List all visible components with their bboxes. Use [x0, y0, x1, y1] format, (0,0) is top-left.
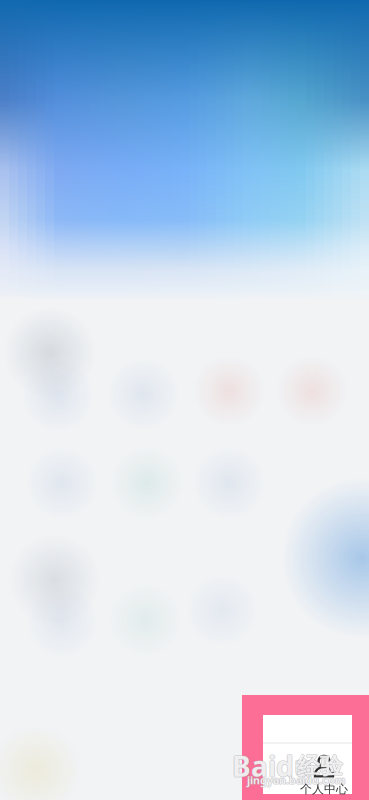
staticText: 经验	[298, 752, 344, 780]
staticText: 经验	[297, 753, 343, 781]
staticText: jingyan.baidu.com	[248, 773, 346, 787]
staticText: 经验	[296, 752, 342, 780]
button[interactable]: 个人中心	[263, 715, 352, 794]
staticText: jingyan.baidu.com	[247, 773, 345, 787]
staticText: Baidu	[233, 747, 313, 785]
staticText: Baidu	[232, 747, 312, 785]
staticText: jingyan.baidu.com	[246, 773, 344, 787]
staticText: 个人中心	[300, 782, 348, 796]
staticText: jingyan.baidu.com	[247, 772, 345, 786]
staticText: jingyan.baidu.com	[247, 774, 345, 788]
staticText: 经验	[297, 751, 343, 779]
staticText: Baidu	[232, 747, 312, 784]
staticText: 经验	[297, 752, 343, 780]
staticText: Baidu	[232, 748, 312, 785]
staticText: Baidu	[231, 747, 311, 785]
